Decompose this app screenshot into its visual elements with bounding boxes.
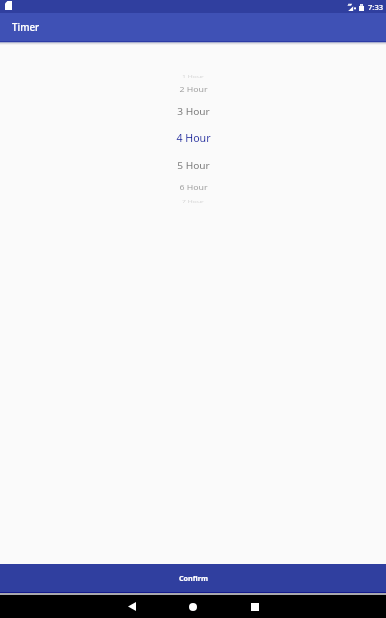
staticText: 7 Hour — [182, 199, 204, 204]
staticText: Timer — [12, 21, 40, 34]
button[interactable]: 2 Hour — [0, 80, 386, 100]
button[interactable]: 3 Hour — [0, 101, 386, 121]
button[interactable]: Confirm — [0, 564, 386, 592]
button[interactable]: Home — [181, 595, 205, 618]
staticText: 4 Hour — [176, 131, 211, 146]
staticText: 5 Hour — [177, 158, 210, 172]
button[interactable]: Recent apps — [243, 595, 267, 618]
button[interactable]: 6 Hour — [0, 178, 386, 198]
staticText: 6 Hour — [179, 183, 208, 192]
button[interactable]: Back — [120, 595, 144, 618]
staticText: 7:33 — [368, 2, 384, 12]
staticText: 3 Hour — [177, 104, 210, 118]
button[interactable]: Timer — [0, 13, 386, 41]
button[interactable]: 5 Hour — [0, 155, 386, 175]
staticText: 1 Hour — [182, 74, 204, 79]
staticText: 2 Hour — [179, 85, 208, 94]
button[interactable]: 4 Hour — [0, 128, 386, 148]
staticText: Confirm — [179, 573, 208, 583]
